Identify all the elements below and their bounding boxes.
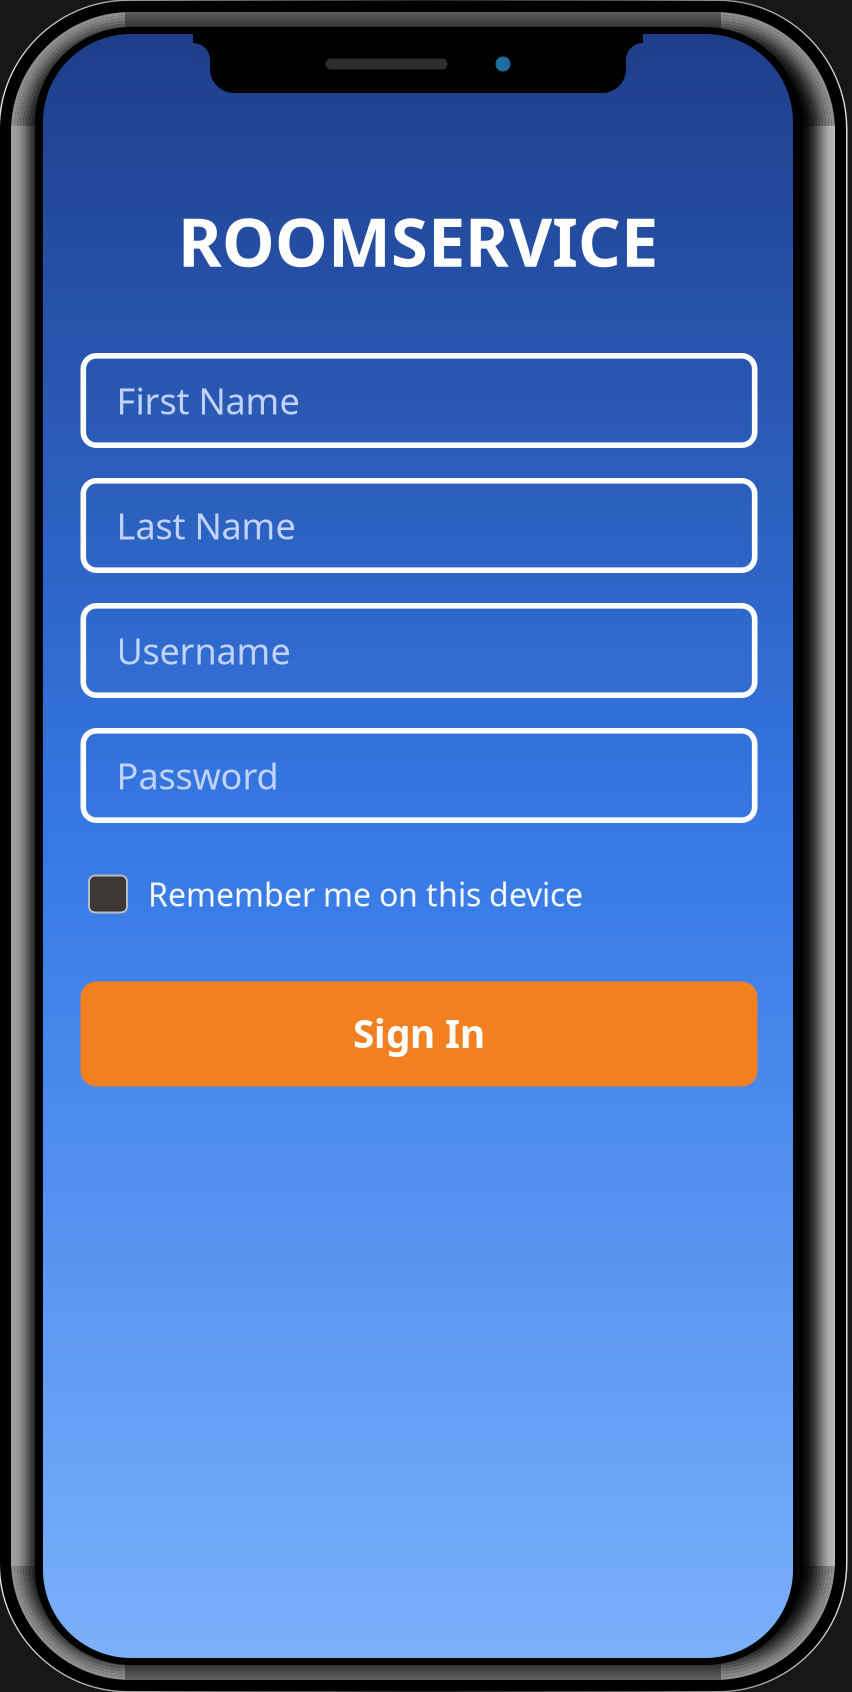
button[interactable]: Remember me on this device: [80, 864, 756, 924]
staticText: Remember me on this device: [148, 873, 583, 915]
staticText: Sign In: [353, 1007, 485, 1059]
staticText: Username: [116, 627, 290, 674]
button[interactable]: Sign In: [80, 981, 757, 1086]
staticText: Last Name: [116, 502, 295, 549]
staticText: Password: [116, 752, 278, 799]
staticText: ROOMSERVICE: [178, 197, 658, 285]
staticText: First Name: [116, 377, 299, 424]
